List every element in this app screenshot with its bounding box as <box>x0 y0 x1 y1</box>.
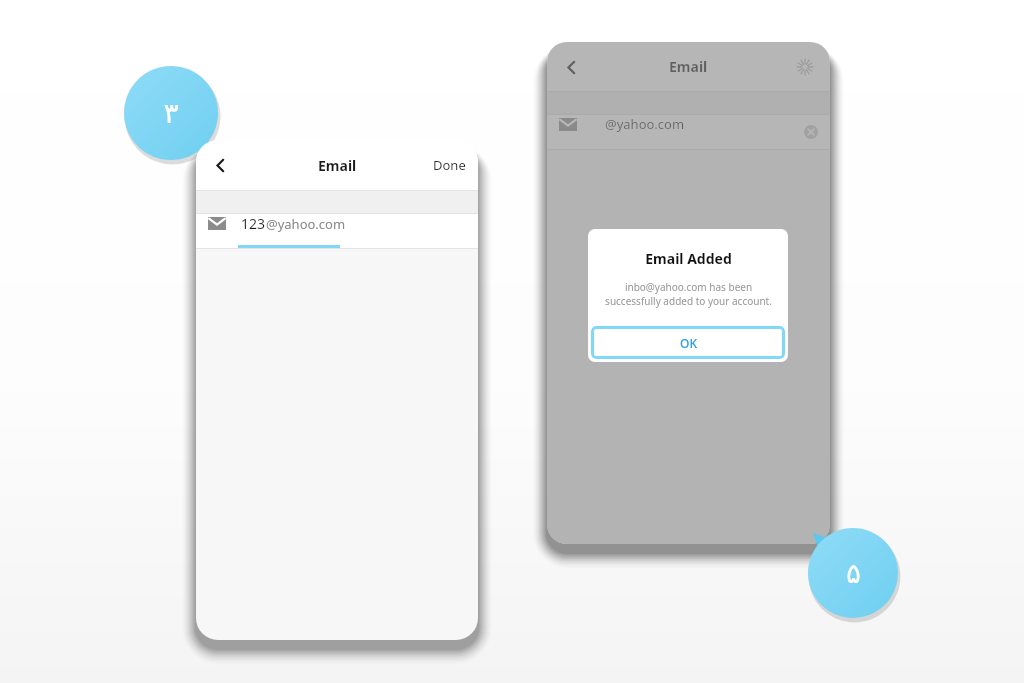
staticText: Email <box>669 57 708 76</box>
staticText: OK <box>680 335 697 351</box>
button[interactable]: Step 3 <box>124 66 218 160</box>
staticText: @yahoo.com <box>605 115 685 133</box>
staticText: ۵ <box>846 558 861 589</box>
button[interactable]: OK <box>591 326 785 359</box>
button[interactable]: Back <box>551 47 591 87</box>
button[interactable]: Clear <box>800 121 822 143</box>
button[interactable]: Back <box>200 145 240 185</box>
staticText: 123 <box>241 214 266 233</box>
staticText: Email <box>318 156 357 175</box>
button[interactable]: Done <box>421 146 478 184</box>
staticText: inbo@yahoo.com has been successfully add… <box>605 280 772 308</box>
button[interactable]: Step 5 <box>808 528 898 618</box>
staticText: ۳ <box>163 97 179 130</box>
button[interactable]: @yahoo.com <box>547 115 830 149</box>
staticText: Email Added <box>645 249 732 268</box>
staticText: @yahoo.com <box>266 215 346 233</box>
button[interactable]: Loading <box>790 52 820 82</box>
staticText: Done <box>433 156 466 174</box>
button[interactable]: 123 <box>196 214 478 248</box>
